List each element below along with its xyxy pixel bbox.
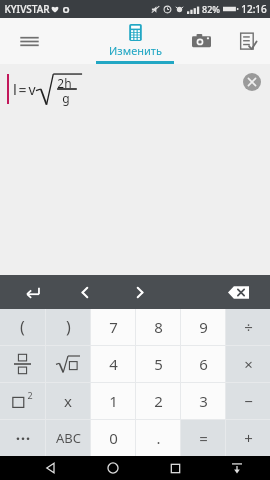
staticText: 6 — [199, 354, 208, 374]
button[interactable]: = — [181, 420, 225, 456]
button[interactable]: Tasks — [224, 18, 270, 64]
staticText: v — [28, 80, 36, 99]
button[interactable]: ABC — [46, 420, 90, 456]
button[interactable]: 8 — [136, 309, 180, 345]
staticText: O — [62, 3, 70, 15]
staticText: ABC — [56, 429, 81, 447]
staticText: 3 — [199, 391, 208, 411]
button[interactable]: × — [226, 346, 270, 382]
button[interactable]: Изменить — [93, 18, 177, 64]
staticText: = — [199, 428, 208, 448]
staticText: × — [244, 354, 253, 374]
staticText: = — [18, 80, 27, 99]
staticText: 1 — [109, 391, 118, 411]
button[interactable]: Enter — [14, 275, 50, 309]
staticText: g — [62, 90, 70, 106]
button[interactable]: − — [226, 383, 270, 419]
button[interactable]: Move left — [67, 275, 103, 309]
button[interactable]: 3 — [181, 383, 225, 419]
staticText: + — [244, 428, 253, 448]
staticText: 2 — [27, 389, 33, 401]
button[interactable]: Camera — [178, 18, 224, 64]
button[interactable]: Clear — [242, 72, 262, 92]
staticText: ) — [66, 316, 71, 338]
staticText: 12:16 — [241, 2, 267, 16]
button[interactable]: Menu — [0, 18, 58, 64]
button[interactable]: . — [136, 420, 180, 456]
staticText: 2 — [154, 391, 163, 411]
staticText: KYIVSTAR — [4, 2, 50, 16]
button[interactable]: 0 — [91, 420, 135, 456]
staticText: 0 — [109, 428, 118, 448]
staticText: 4 — [109, 354, 118, 374]
button[interactable]: Backspace — [220, 275, 256, 309]
button[interactable]: fraction — [0, 346, 45, 382]
button[interactable]: 1 — [91, 383, 135, 419]
staticText: x — [64, 391, 72, 411]
button[interactable]: ÷ — [226, 309, 270, 345]
staticText: 82% — [202, 3, 220, 15]
staticText: ( — [20, 316, 25, 338]
staticText: − — [244, 391, 253, 411]
button[interactable]: square — [0, 383, 45, 419]
button[interactable]: Home — [98, 456, 128, 480]
staticText: 5 — [154, 354, 163, 374]
button[interactable]: 2 — [136, 383, 180, 419]
staticText: 8 — [154, 317, 163, 337]
button[interactable]: Recent apps — [160, 456, 190, 480]
staticText: 9 — [199, 317, 208, 337]
button[interactable]: Move right — [121, 275, 157, 309]
staticText: l — [13, 79, 17, 99]
button[interactable]: ( — [0, 309, 45, 345]
button[interactable]: sqrt — [46, 346, 90, 382]
button[interactable]: 7 — [91, 309, 135, 345]
button[interactable]: x — [46, 383, 90, 419]
staticText: 2h — [57, 75, 72, 91]
staticText: Изменить — [109, 43, 162, 58]
staticText: 7 — [109, 317, 118, 337]
staticText: ÷ — [244, 317, 253, 337]
button[interactable]: 4 — [91, 346, 135, 382]
button[interactable]: Back — [36, 456, 66, 480]
button[interactable]: Hide keyboard — [222, 456, 252, 480]
button[interactable]: 6 — [181, 346, 225, 382]
button[interactable]: + — [226, 420, 270, 456]
button[interactable]: 5 — [136, 346, 180, 382]
staticText: . — [156, 428, 161, 448]
button[interactable]: dots — [0, 420, 45, 456]
button[interactable]: 9 — [181, 309, 225, 345]
button[interactable]: ) — [46, 309, 90, 345]
